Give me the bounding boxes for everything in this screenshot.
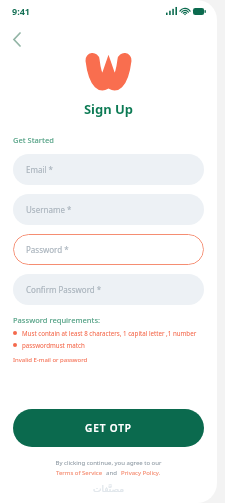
staticText: Confirm Password * [26, 284, 102, 295]
button[interactable]: Email * [13, 154, 204, 185]
staticText: مصنَّفات [0, 484, 217, 494]
staticText: By clicking continue, you agree to our [0, 459, 217, 467]
button[interactable]: Privacy Policy. [121, 469, 161, 477]
staticText: Sign Up [0, 100, 217, 118]
staticText: and [103, 469, 121, 477]
button[interactable]: GET OTP [13, 409, 204, 447]
button[interactable]: Back [4, 26, 30, 52]
button[interactable]: Username * [13, 194, 204, 225]
staticText: Username * [26, 204, 72, 215]
staticText: Password * [26, 244, 69, 255]
staticText: Password requirements: [13, 315, 101, 325]
staticText: 9:41 [12, 5, 30, 17]
staticText: Get Started [13, 135, 54, 145]
staticText: Invalid E-mail or password [13, 356, 88, 364]
staticText: Email * [26, 164, 54, 175]
staticText: Must contain at least 8 characters, 1 ca… [22, 329, 197, 337]
button[interactable]: Password * [13, 234, 204, 265]
staticText: GET OTP [85, 421, 132, 435]
button[interactable]: Terms of Service [56, 469, 103, 477]
staticText: passwordmust match [22, 341, 85, 349]
button[interactable]: Confirm Password * [13, 274, 204, 305]
